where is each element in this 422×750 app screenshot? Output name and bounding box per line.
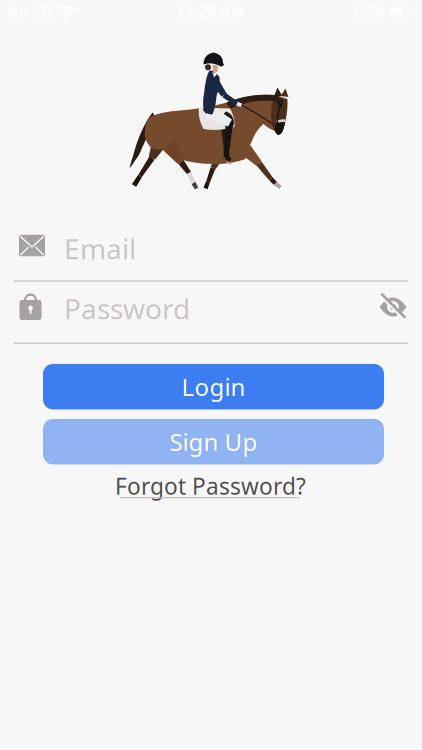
button[interactable]: Password bbox=[0, 285, 422, 331]
button[interactable]: Show password bbox=[370, 284, 416, 330]
staticText: Email bbox=[64, 230, 136, 267]
staticText: Forgot Password? bbox=[115, 471, 306, 501]
staticText: Login bbox=[181, 371, 245, 403]
button[interactable]: Email bbox=[0, 225, 422, 271]
button[interactable]: Forgot Password? bbox=[90, 471, 330, 501]
button[interactable]: Login bbox=[43, 364, 384, 409]
staticText: Password bbox=[64, 290, 190, 327]
staticText: Sign Up bbox=[169, 426, 257, 458]
button[interactable]: Sign Up bbox=[43, 419, 384, 464]
